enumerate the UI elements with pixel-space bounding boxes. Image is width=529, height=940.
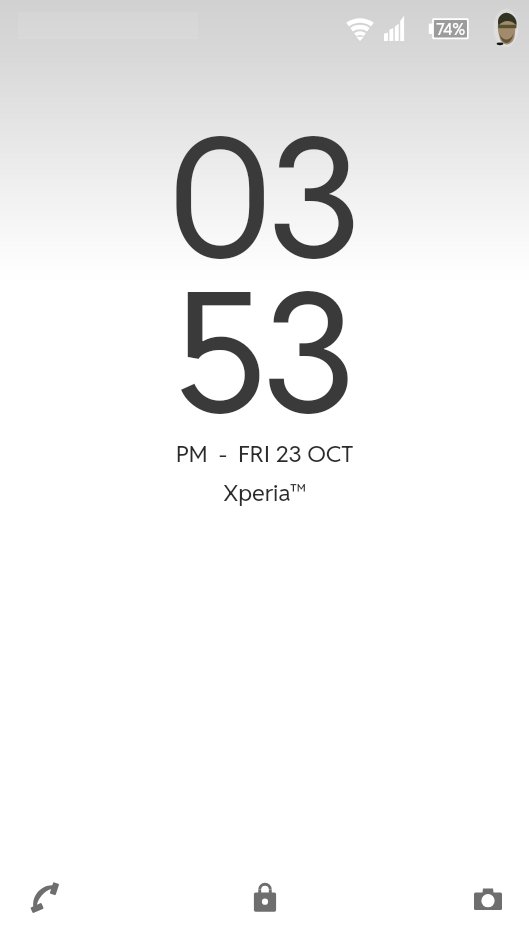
staticText: 74%: [432, 19, 469, 40]
staticText: 53: [0, 243, 525, 461]
staticText: 03: [0, 88, 525, 306]
staticText: Xperia™: [0, 477, 529, 508]
button[interactable]: Phone: [6, 859, 78, 931]
staticText: PM - FRI 23 OCT: [0, 438, 529, 469]
button[interactable]: Camera: [452, 861, 524, 933]
button[interactable]: Unlock: [229, 857, 301, 929]
